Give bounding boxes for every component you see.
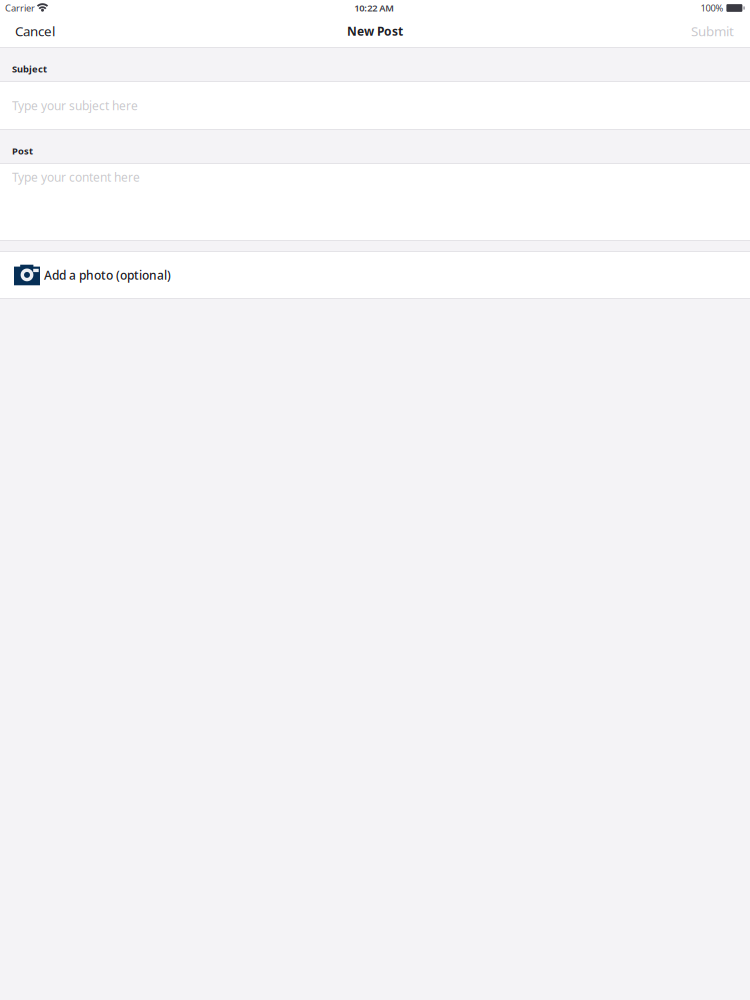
staticText: Type your subject here bbox=[12, 97, 138, 113]
staticText: Submit bbox=[691, 22, 734, 40]
navigationBar: New Post bbox=[0, 18, 750, 47]
button[interactable]: Type your content here bbox=[0, 164, 750, 240]
staticText: Add a photo (optional) bbox=[44, 267, 171, 283]
button[interactable]: Add a photo (optional) bbox=[0, 252, 750, 298]
button[interactable]: Cancel bbox=[0, 16, 70, 45]
staticText: 10:22 AM bbox=[354, 2, 394, 14]
staticText: Post bbox=[12, 145, 33, 157]
button[interactable]: Type your subject here bbox=[0, 82, 750, 129]
button[interactable]: Submit bbox=[675, 16, 750, 45]
staticText: Cancel bbox=[15, 22, 55, 40]
staticText: 100% bbox=[700, 2, 723, 14]
staticText: New Post bbox=[347, 23, 403, 39]
staticText: Carrier bbox=[5, 2, 35, 14]
staticText: Subject bbox=[12, 63, 47, 75]
staticText: Type your content here bbox=[12, 169, 140, 185]
